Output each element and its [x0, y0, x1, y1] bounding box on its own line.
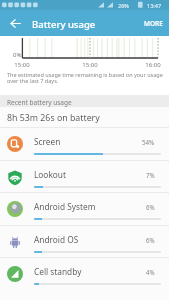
staticText: MORE — [144, 19, 163, 28]
staticText: 54% — [142, 138, 155, 146]
staticText: 6% — [146, 203, 155, 211]
staticText: 7% — [146, 171, 155, 179]
staticText: Lookout — [34, 169, 66, 180]
staticText: Android OS — [34, 234, 79, 245]
staticText: 16:00 — [145, 61, 161, 69]
button[interactable]: Screen — [0, 127, 169, 160]
staticText: Android System — [34, 201, 96, 212]
button[interactable]: Android OS — [0, 225, 169, 258]
staticText: 15:00 — [14, 61, 30, 69]
staticText: 15:00 — [82, 61, 98, 69]
button[interactable]: Android System — [0, 192, 169, 225]
staticText: 13:47 — [147, 2, 162, 9]
button[interactable]: Cell standby — [0, 257, 169, 290]
staticText: Cell standby — [34, 266, 82, 277]
staticText: 8h 53m 26s on battery — [7, 112, 100, 124]
staticText: Battery usage — [32, 18, 96, 31]
button[interactable]: Lookout — [0, 160, 169, 193]
button[interactable]: 8h 53m 26s on battery — [0, 107, 169, 127]
staticText: 6% — [146, 236, 155, 244]
staticText: 0% — [13, 51, 22, 59]
staticText: 4% — [146, 268, 155, 276]
button[interactable]: MORE — [138, 10, 169, 36]
staticText: Recent battery usage — [7, 98, 72, 107]
staticText: Screen — [34, 136, 61, 147]
button[interactable]: Back — [2, 10, 28, 36]
staticText: The estimated usage time remaining is ba… — [7, 71, 164, 85]
staticText: 26% — [118, 2, 129, 9]
